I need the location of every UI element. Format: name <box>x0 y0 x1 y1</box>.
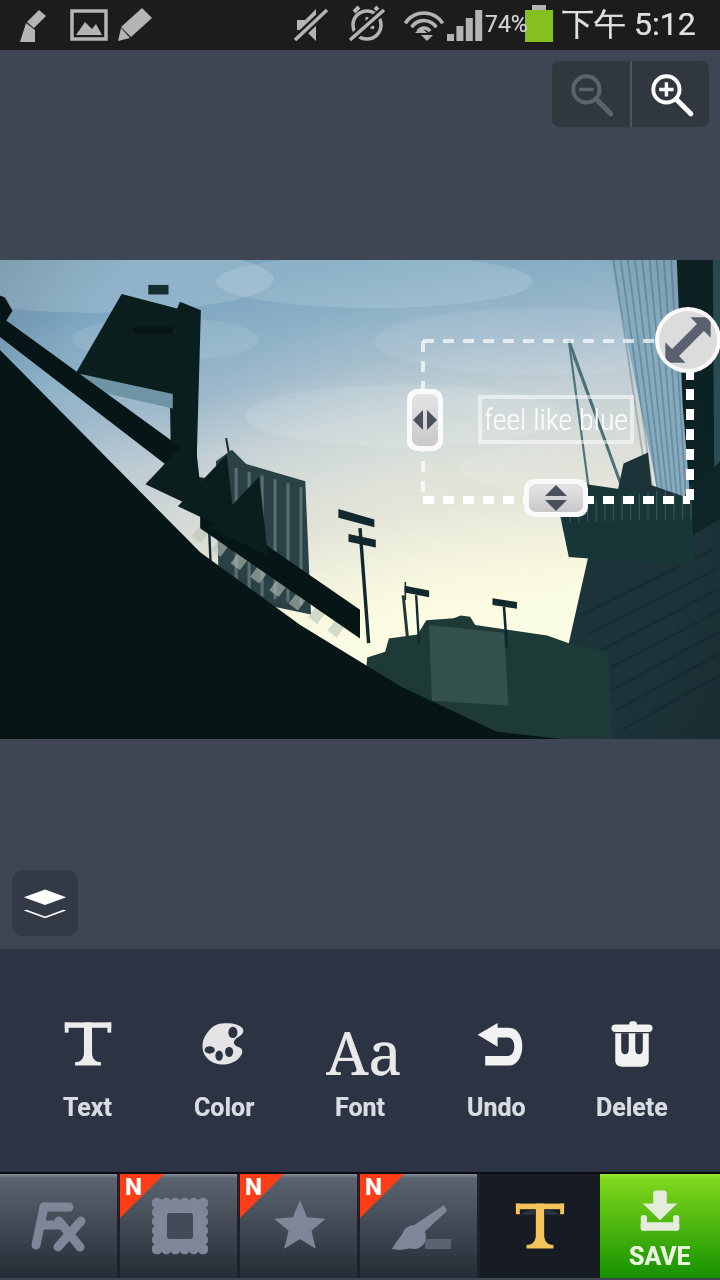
staticText: Font <box>335 1093 386 1122</box>
button[interactable]: Font <box>292 949 428 1174</box>
staticText: 74% <box>485 11 528 38</box>
staticText: Aa <box>326 1011 403 1093</box>
button[interactable]: Text tool <box>480 1174 600 1278</box>
staticText: N <box>125 1173 142 1201</box>
staticText: Color <box>194 1093 255 1122</box>
staticText: Text <box>63 1093 113 1122</box>
staticText: N <box>365 1173 382 1201</box>
button[interactable]: Effects <box>0 1174 120 1278</box>
button[interactable]: Undo <box>428 949 564 1174</box>
staticText: 下午 5:12 <box>562 4 696 44</box>
staticText: Delete <box>596 1093 668 1122</box>
button[interactable]: Text <box>20 949 156 1174</box>
staticText: N <box>245 1173 262 1201</box>
button[interactable]: Scale <box>655 307 720 373</box>
button[interactable]: Brush <box>360 1174 480 1278</box>
button[interactable]: Zoom in <box>632 61 709 127</box>
button[interactable]: Zoom out <box>552 61 630 127</box>
staticText: feel like blue <box>484 402 629 437</box>
button[interactable]: Delete <box>564 949 700 1174</box>
button[interactable]: Frames <box>120 1174 240 1278</box>
button[interactable]: SAVE <box>600 1174 720 1278</box>
staticText: SAVE <box>629 1242 691 1271</box>
button[interactable]: Resize height <box>524 479 588 517</box>
button[interactable]: Color <box>156 949 292 1174</box>
button[interactable]: Resize width <box>407 389 443 451</box>
button[interactable]: Stickers <box>240 1174 360 1278</box>
button[interactable]: Layers <box>12 870 78 936</box>
staticText: Undo <box>467 1093 526 1122</box>
